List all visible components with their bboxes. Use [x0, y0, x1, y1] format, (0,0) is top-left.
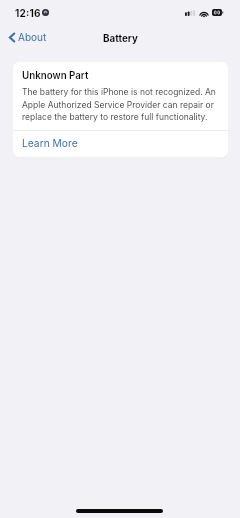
button[interactable]: Back to About	[5, 28, 53, 47]
staticText: The battery for this iPhone is not recog…	[22, 87, 219, 122]
staticText: Unknown Part	[22, 70, 89, 82]
staticText: Learn More	[22, 137, 78, 149]
staticText: About	[18, 31, 47, 43]
button[interactable]: Learn More	[13, 131, 228, 157]
staticText: Battery	[103, 33, 138, 45]
staticText: 12:16	[15, 7, 41, 19]
